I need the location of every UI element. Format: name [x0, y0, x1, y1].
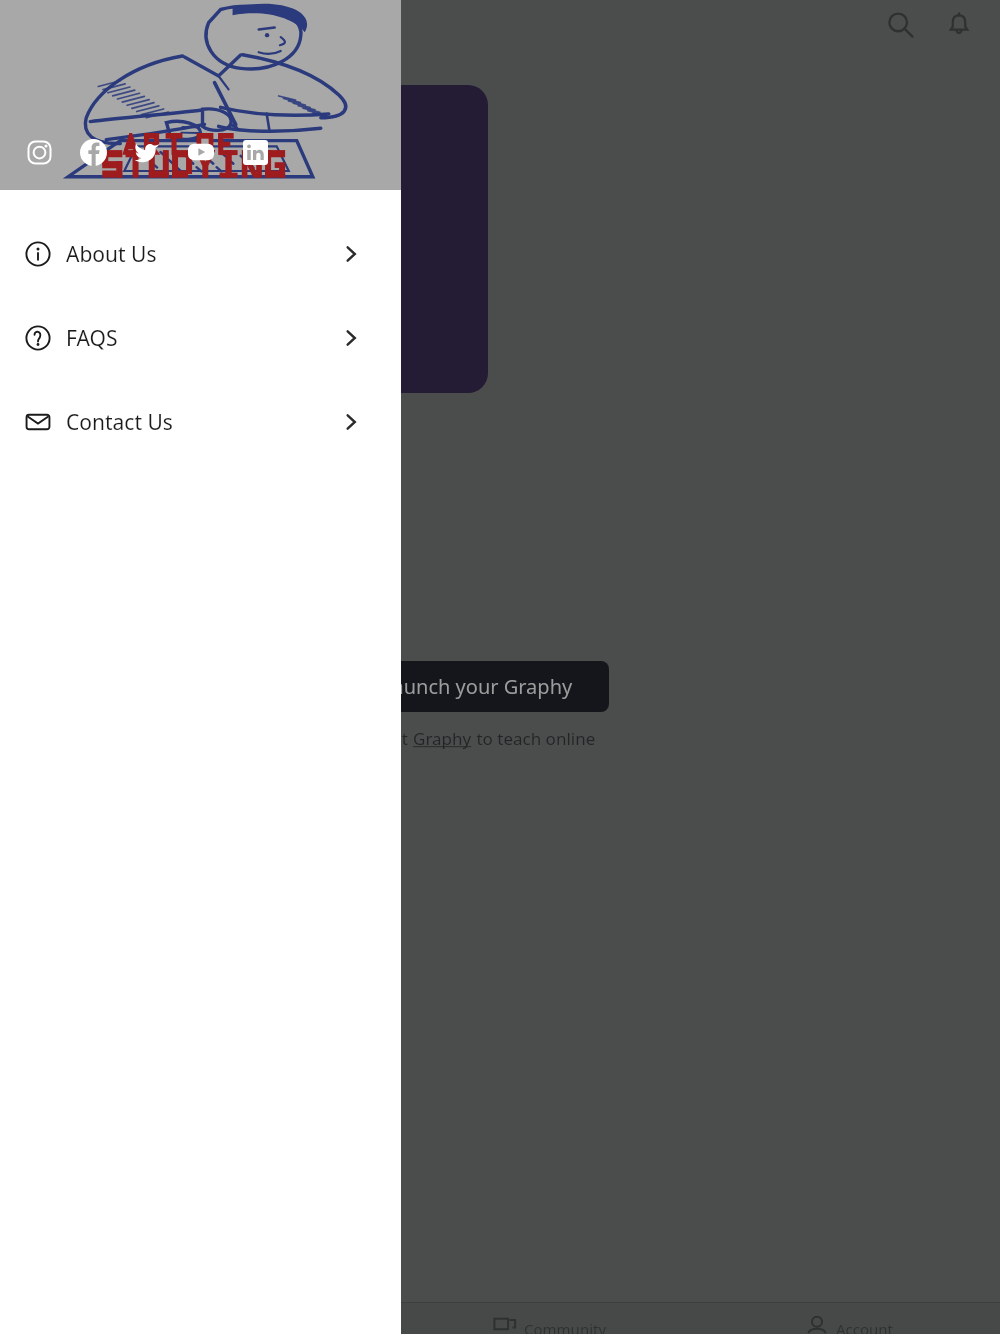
- button[interactable]: Community: [401, 1303, 700, 1334]
- button[interactable]: Launch your Graphy: [330, 661, 609, 712]
- button[interactable]: Graphy: [413, 727, 472, 750]
- button[interactable]: Instagram: [22, 135, 56, 169]
- staticText: Launch your Graphy: [382, 673, 573, 700]
- button[interactable]: LinkedIn: [238, 135, 272, 169]
- staticText: About Us: [66, 240, 157, 269]
- staticText: Contact Us: [66, 408, 173, 437]
- button[interactable]: Contact Us: [0, 380, 401, 464]
- button[interactable]: [200, 85, 488, 393]
- staticText: Community: [524, 1319, 607, 1334]
- button[interactable]: About Us: [0, 212, 401, 296]
- staticText: to teach online: [472, 727, 596, 750]
- button[interactable]: Search: [879, 4, 921, 46]
- button[interactable]: FAQS: [0, 296, 401, 380]
- staticText: Account: [836, 1319, 894, 1334]
- button[interactable]: Twitter: [130, 135, 164, 169]
- staticText: creators trust: [300, 727, 413, 750]
- button[interactable]: YouTube: [184, 135, 218, 169]
- staticText: FAQS: [66, 324, 118, 353]
- button[interactable]: Account: [700, 1303, 1000, 1334]
- button[interactable]: Notifications: [938, 4, 980, 46]
- button[interactable]: Facebook: [76, 135, 110, 169]
